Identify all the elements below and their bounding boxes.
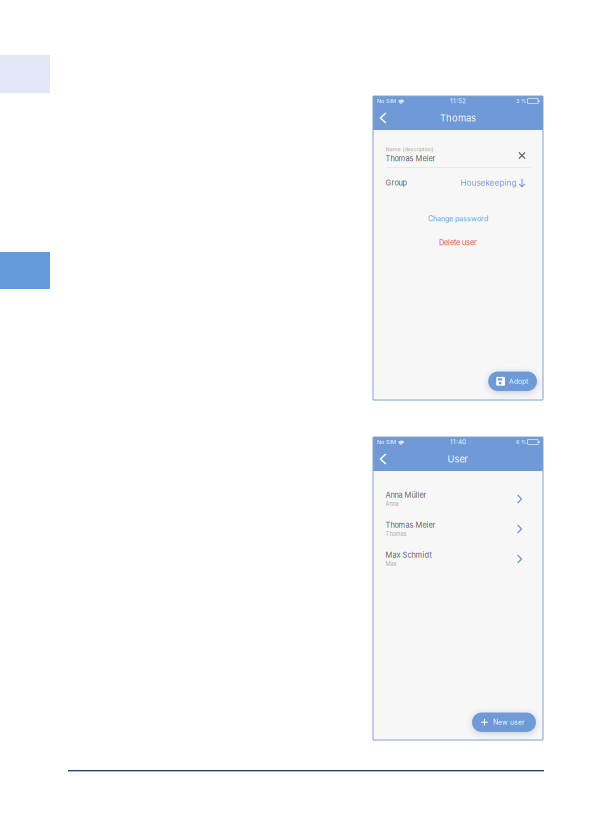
button[interactable]: Thomas Meier [373,514,543,544]
staticText: Thomas Meier [385,521,435,530]
button[interactable]: Change password [373,213,543,225]
staticText: Max Schmidt [385,551,431,560]
button[interactable]: New user [472,712,536,732]
staticText: Thomas Meier [385,154,435,163]
staticText: Change password [428,214,488,223]
staticText: Delete user [439,238,477,247]
staticText: Anna Müller [385,491,426,500]
staticText: User [447,453,468,465]
staticText: New user [493,718,525,726]
staticText: Anna [385,501,398,507]
staticText: 3 % [516,98,526,104]
button[interactable]: Back [373,106,393,130]
button[interactable]: Delete user [373,237,543,249]
staticText: No SIM [377,98,396,104]
button[interactable]: Back [373,447,393,471]
staticText: Thomas [440,112,476,124]
button[interactable]: Group [373,168,543,188]
button[interactable]: Max Schmidt [373,544,543,574]
staticText: Max [385,561,396,567]
staticText: Thomas [385,531,406,537]
staticText: Housekeeping [460,178,516,188]
button[interactable]: Anna Müller [373,484,543,514]
button[interactable]: Name (description) [373,130,543,163]
staticText: 11:52 [450,97,466,105]
staticText: Group [385,178,407,187]
staticText: No SIM [377,439,396,445]
staticText: 6 % [516,439,526,445]
button[interactable]: Adopt [488,371,537,391]
staticText: 11:40 [450,438,466,446]
staticText: Adopt [509,377,528,385]
staticText: Name (description) [385,146,433,152]
